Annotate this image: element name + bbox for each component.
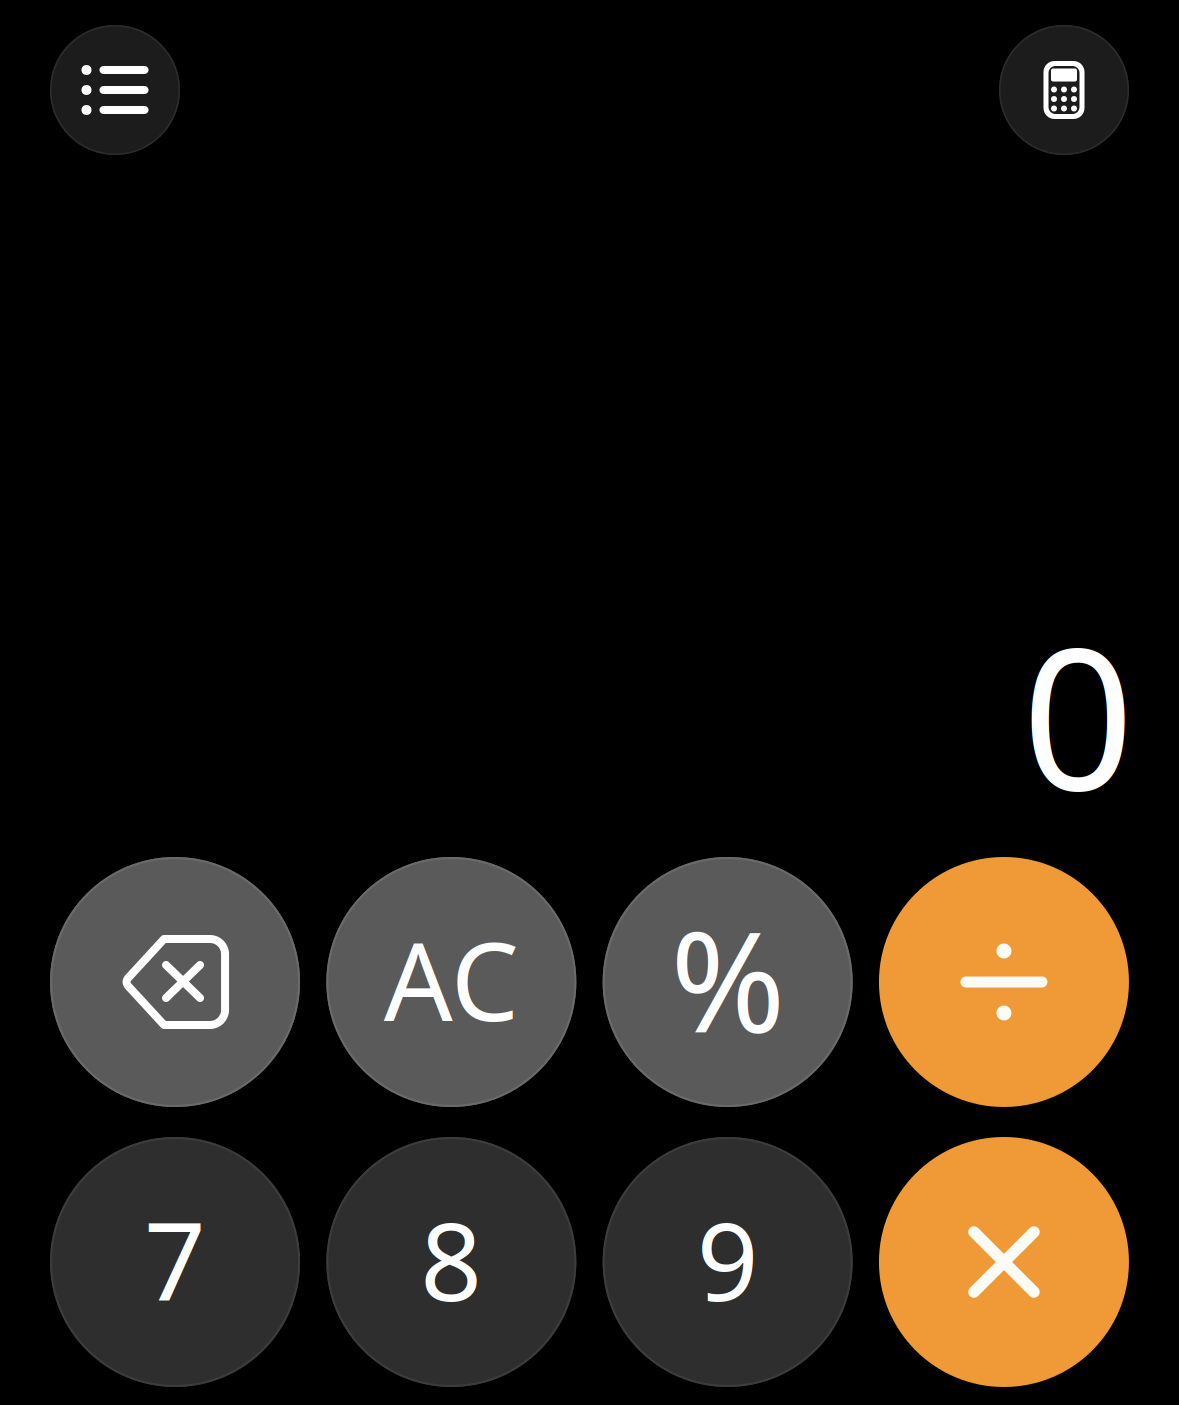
button[interactable]: % (603, 857, 853, 1107)
staticText: 8 (420, 1187, 482, 1331)
staticText: 9 (697, 1187, 759, 1331)
button[interactable]: Delete (50, 857, 300, 1107)
staticText: 7 (144, 1187, 206, 1331)
button[interactable]: Divide (879, 857, 1129, 1107)
button[interactable]: 8 (326, 1137, 576, 1387)
staticText: AC (384, 907, 519, 1051)
button[interactable]: 9 (603, 1137, 853, 1387)
staticText: 0 (1022, 584, 1134, 844)
button[interactable]: Multiply (879, 1137, 1129, 1387)
staticText: % (670, 887, 785, 1071)
button[interactable]: AC (326, 857, 576, 1107)
button[interactable]: History (50, 25, 180, 155)
button[interactable]: Calculator mode (999, 25, 1129, 155)
button[interactable]: 7 (50, 1137, 300, 1387)
